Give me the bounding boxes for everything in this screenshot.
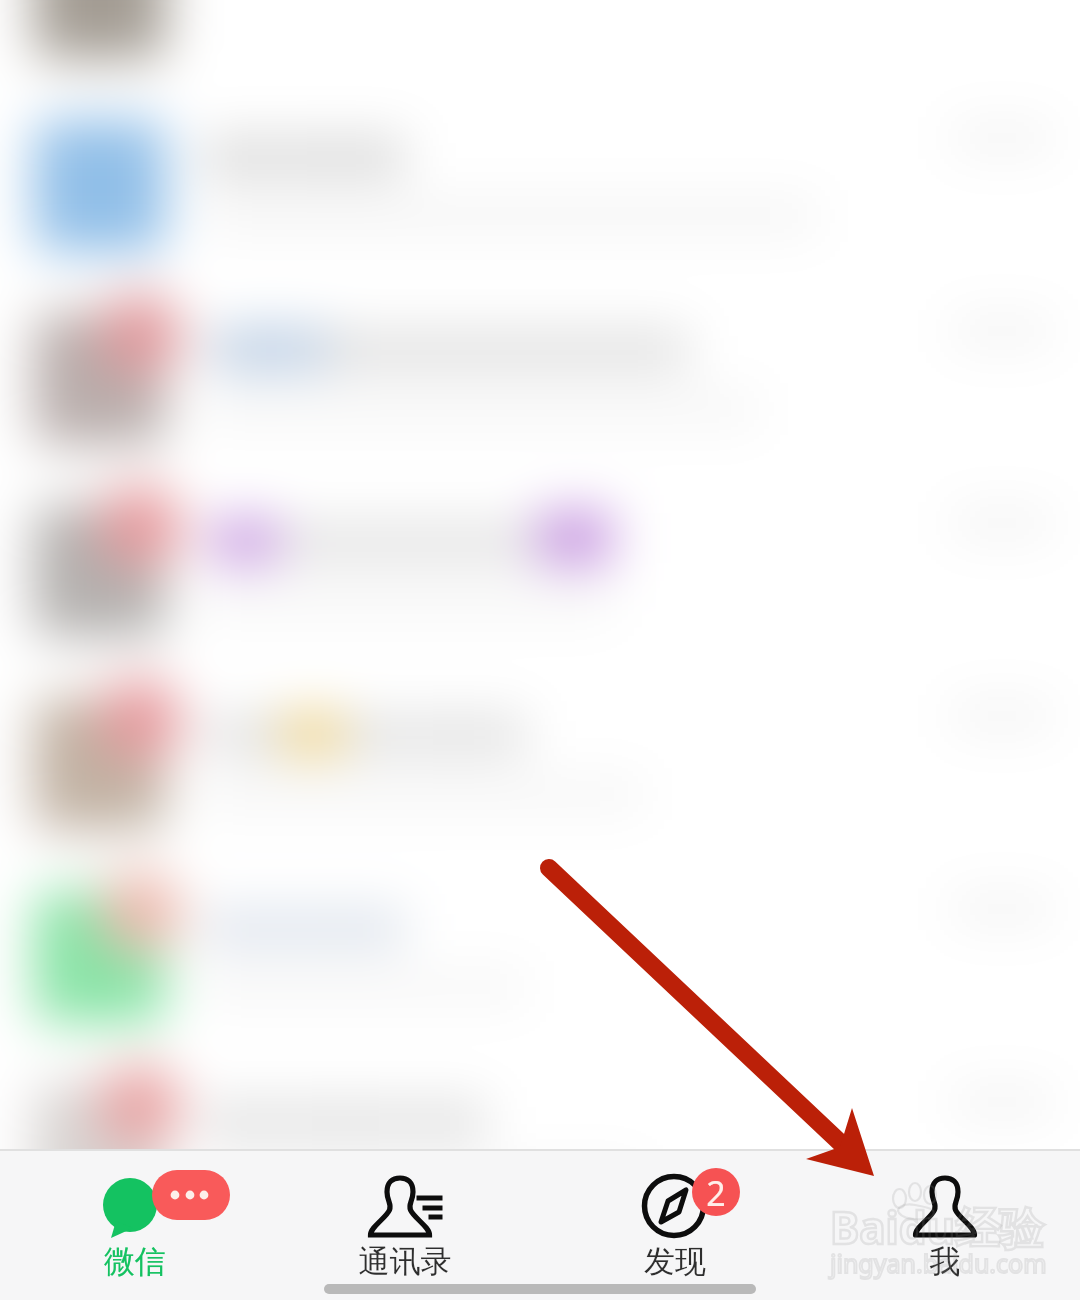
staticText: 我: [810, 1242, 1080, 1281]
staticText: 微信: [0, 1242, 270, 1281]
staticText: Baidu经验: [830, 1197, 1044, 1257]
button[interactable]: 微信: [0, 1149, 270, 1289]
staticText: 2: [696, 1170, 736, 1216]
button[interactable]: 我: [810, 1149, 1080, 1289]
button[interactable]: 发现: [540, 1149, 810, 1289]
staticText: jingyan.baidu.com: [830, 1246, 1047, 1280]
button[interactable]: 通讯录: [270, 1149, 540, 1289]
staticText: 发现: [540, 1242, 810, 1281]
staticText: 通讯录: [270, 1242, 540, 1281]
